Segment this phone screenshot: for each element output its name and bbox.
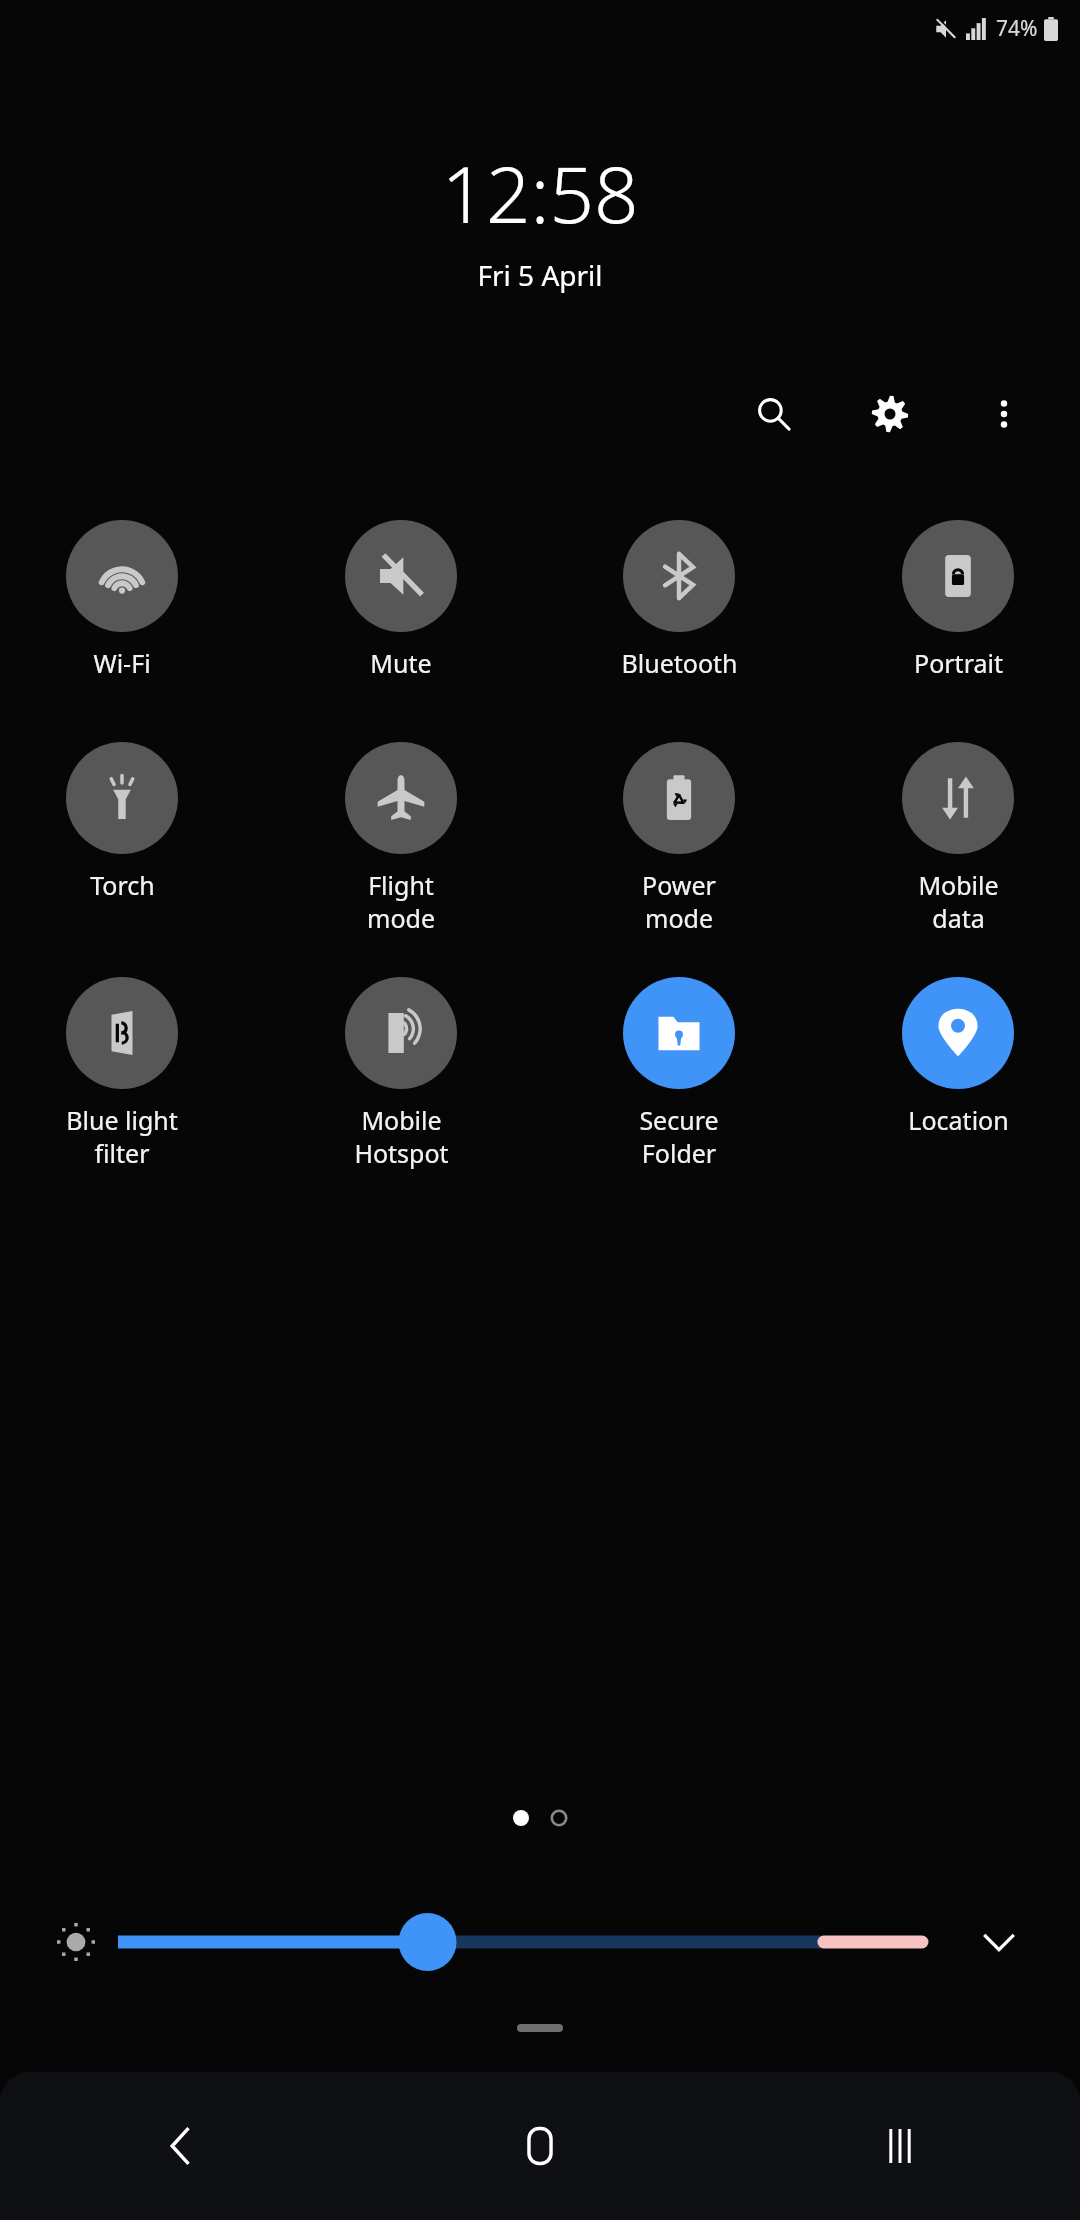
button[interactable]: Secure Folder [579, 977, 779, 1170]
staticText: Power mode [642, 868, 716, 935]
button[interactable] [517, 2024, 563, 2032]
staticText: Wi-Fi [93, 646, 151, 680]
button[interactable]: Search [738, 378, 810, 450]
button[interactable]: Home [360, 2072, 720, 2220]
staticText: Mute [370, 646, 432, 680]
button[interactable]: Torch [22, 742, 222, 902]
staticText: 74% [996, 14, 1038, 43]
staticText: Bluetooth [621, 646, 738, 680]
button[interactable]: Bluetooth [579, 520, 779, 680]
button[interactable]: Mobile data [858, 742, 1058, 935]
staticText: Mobile data [918, 868, 999, 935]
button[interactable]: Auto brightness [44, 1910, 108, 1974]
button[interactable]: Portrait [858, 520, 1058, 680]
button[interactable]: Recents [720, 2072, 1080, 2220]
staticText: Torch [90, 868, 155, 902]
button[interactable]: Mute [301, 520, 501, 680]
button[interactable]: Expand [964, 1907, 1034, 1977]
button[interactable]: Location [858, 977, 1058, 1137]
staticText: Portrait [914, 646, 1003, 680]
button[interactable]: Wi-Fi [22, 520, 222, 680]
button[interactable]: Back [0, 2072, 360, 2220]
staticText: Secure Folder [639, 1103, 719, 1170]
staticText: Fri 5 April [477, 256, 603, 294]
button[interactable]: Settings [854, 378, 926, 450]
button[interactable]: More options [968, 378, 1040, 450]
button[interactable]: Flight mode [301, 742, 501, 935]
staticText: Location [908, 1103, 1009, 1137]
staticText: Blue light filter [66, 1103, 178, 1170]
staticText: Mobile Hotspot [354, 1103, 449, 1170]
button[interactable]: Power mode [579, 742, 779, 935]
button[interactable]: Blue light filter [22, 977, 222, 1170]
button[interactable]: Mobile Hotspot [301, 977, 501, 1170]
staticText: Flight mode [367, 868, 435, 935]
button[interactable] [118, 1910, 930, 1974]
staticText: 12:58 [441, 140, 639, 246]
